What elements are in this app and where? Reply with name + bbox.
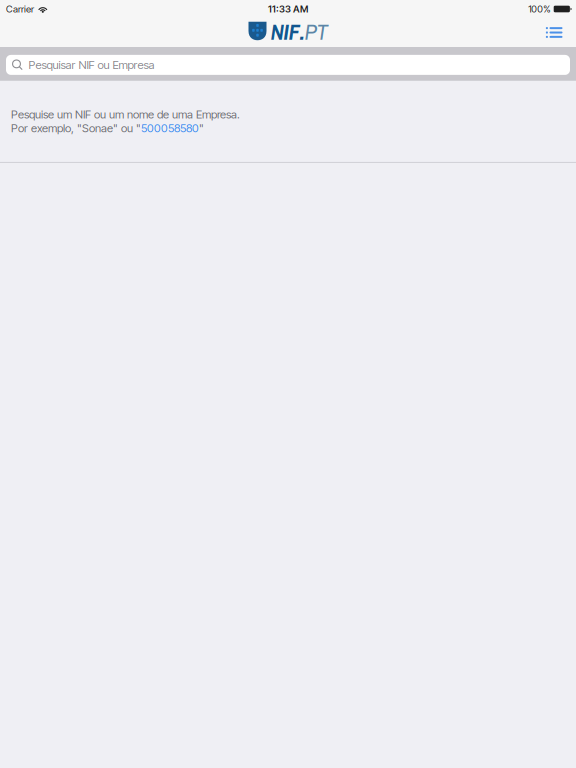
staticText: PT bbox=[304, 16, 327, 47]
staticText: . bbox=[299, 16, 304, 47]
staticText: Carrier bbox=[6, 3, 34, 15]
staticText: Por exemplo, "Sonae" ou " bbox=[11, 121, 141, 135]
staticText: 11:33 AM bbox=[268, 3, 308, 15]
button[interactable]: Pesquisar NIF ou Empresa bbox=[6, 53, 570, 73]
staticText: Pesquisar NIF ou Empresa bbox=[28, 58, 154, 72]
staticText: 500058580 bbox=[141, 121, 199, 135]
staticText: 100% bbox=[528, 3, 550, 15]
staticText: Pesquise um NIF ou um nome de uma Empres… bbox=[11, 107, 240, 121]
button[interactable]: List bbox=[538, 20, 570, 45]
staticText: NIF bbox=[270, 16, 299, 47]
button[interactable]: 500058580 bbox=[141, 121, 199, 135]
staticText: " bbox=[199, 121, 204, 135]
